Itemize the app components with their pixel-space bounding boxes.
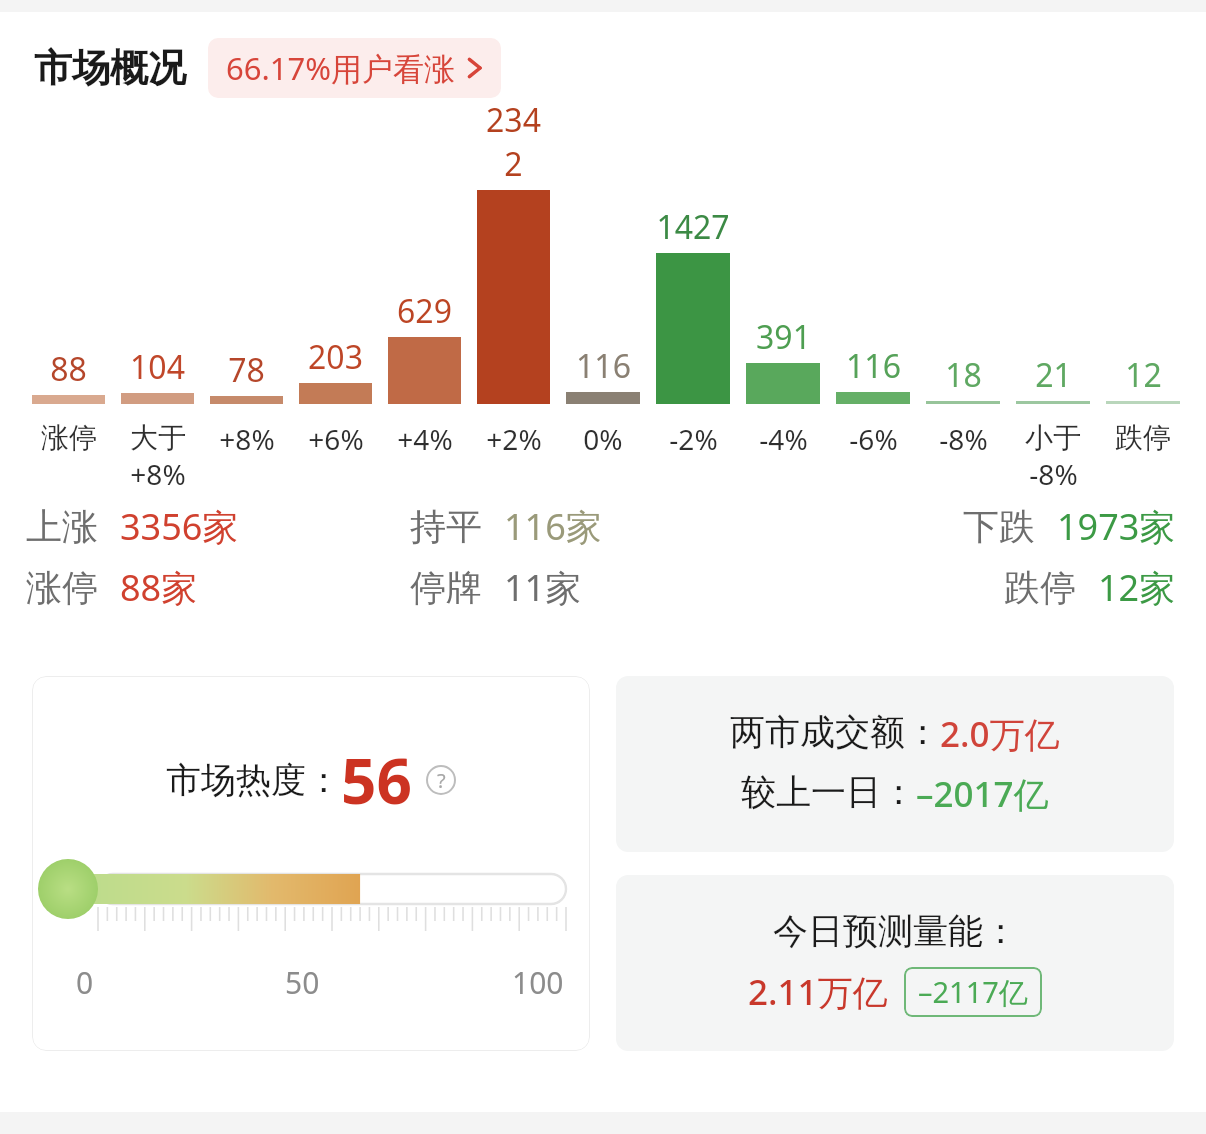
staticText: 2342: [477, 98, 550, 186]
staticText: +4%: [397, 420, 453, 458]
button[interactable]: 今日预测量能：: [616, 875, 1174, 1051]
staticText: 12: [1125, 353, 1162, 397]
staticText: 两市成交额：: [730, 710, 940, 754]
staticText: 116: [846, 344, 901, 388]
staticText: 12家: [1098, 563, 1176, 612]
staticText: 18: [945, 353, 982, 397]
staticText: 持平: [410, 504, 482, 549]
staticText: –2117亿: [918, 972, 1028, 1012]
staticText: 629: [397, 289, 452, 333]
staticText: 88: [50, 347, 87, 391]
staticText: 391: [756, 315, 811, 359]
staticText: 跌停: [1115, 420, 1171, 455]
staticText: 50: [285, 962, 320, 1003]
staticText: +8%: [130, 455, 186, 488]
staticText: +2%: [486, 420, 542, 458]
staticText: +8%: [219, 420, 275, 458]
staticText: +6%: [308, 420, 364, 458]
staticText: 停牌: [410, 565, 482, 610]
staticText: -8%: [939, 420, 988, 458]
staticText: 涨停: [26, 565, 98, 610]
staticText: -6%: [849, 420, 898, 458]
staticText: 104: [130, 345, 185, 389]
staticText: 小于: [1025, 420, 1081, 455]
staticText: 66.17%用户看涨: [226, 47, 455, 89]
staticText: 1973家: [1057, 502, 1176, 551]
staticText: 2.11万亿: [748, 968, 888, 1016]
staticText: 100: [512, 962, 564, 1003]
staticText: 203: [308, 335, 363, 379]
staticText: -8%: [1029, 455, 1078, 488]
staticText: -2%: [669, 420, 718, 458]
staticText: 78: [228, 348, 265, 392]
staticText: -4%: [759, 420, 808, 458]
staticText: 3356家: [120, 502, 239, 551]
staticText: –2017亿: [916, 770, 1049, 818]
staticText: 大于: [130, 420, 186, 455]
button[interactable]: 两市成交额：: [616, 676, 1174, 852]
staticText: ?: [437, 767, 446, 794]
button[interactable]: 市场热度：: [32, 676, 590, 1051]
staticText: 今日预测量能：: [773, 909, 1018, 953]
staticText: 21: [1035, 353, 1072, 397]
staticText: 较上一日：: [741, 770, 916, 814]
staticText: 市场概况: [34, 44, 186, 92]
staticText: 涨停: [41, 420, 97, 455]
staticText: 11家: [504, 563, 582, 612]
staticText: 上涨: [26, 504, 98, 549]
staticText: 0%: [583, 420, 623, 458]
staticText: 下跌: [963, 504, 1035, 549]
staticText: 1427: [656, 205, 730, 249]
staticText: 116家: [504, 502, 602, 551]
button[interactable]: 帮助: [426, 765, 456, 795]
staticText: 88家: [120, 563, 198, 612]
staticText: 116: [576, 344, 631, 388]
staticText: 56: [341, 738, 412, 822]
staticText: 市场热度：: [166, 758, 341, 802]
staticText: 2.0万亿: [940, 710, 1060, 758]
staticText: 跌停: [1004, 565, 1076, 610]
button[interactable]: 66.17%用户看涨: [208, 38, 501, 98]
staticText: 0: [76, 962, 94, 1003]
